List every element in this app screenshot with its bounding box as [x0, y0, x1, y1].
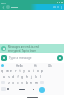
button[interactable]: g [20, 75, 24, 79]
button[interactable]: p [40, 69, 44, 73]
staticText: u [28, 69, 30, 73]
staticText: f [17, 75, 19, 79]
staticText: q [1, 69, 3, 73]
button[interactable]: Voice call [56, 5, 60, 9]
button[interactable]: q [0, 69, 4, 73]
staticText: Messages are end-to-end [8, 45, 39, 49]
button[interactable]: w [5, 69, 9, 73]
staticText: z [8, 81, 10, 85]
button[interactable]: i [31, 69, 35, 73]
staticText: Hi [34, 64, 37, 68]
button[interactable]: d [11, 75, 15, 79]
button[interactable]: k [34, 75, 38, 79]
button[interactable]: r [14, 69, 18, 73]
staticText: c [17, 81, 19, 85]
staticText: h [26, 75, 28, 79]
button[interactable]: e [9, 69, 13, 73]
button[interactable]: z [7, 81, 11, 85]
button[interactable]: Send [57, 55, 63, 61]
button[interactable]: Video call [52, 5, 56, 9]
staticText: d [12, 75, 14, 79]
staticText: l [40, 75, 41, 79]
staticText: Hello [16, 64, 23, 68]
staticText: 9:41 [1, 1, 6, 4]
button[interactable]: Space [19, 89, 25, 90]
button[interactable]: y [22, 69, 26, 73]
staticText: g [21, 75, 23, 79]
button[interactable]: o [36, 69, 40, 73]
button[interactable]: c [16, 81, 20, 85]
button[interactable]: v [20, 81, 24, 85]
staticText: i [33, 69, 34, 73]
staticText: p [41, 69, 43, 73]
button[interactable]: More options [60, 6, 63, 9]
staticText: t [19, 69, 21, 73]
staticText: encrypted. Tap to learn [8, 49, 37, 53]
button[interactable]: Messages are end-to-end [1, 44, 63, 53]
staticText: j [31, 75, 32, 79]
staticText: w [6, 69, 9, 73]
button[interactable] [6, 5, 10, 9]
staticText: y [23, 69, 25, 73]
button[interactable]: Google search [1, 64, 4, 67]
staticText: s [8, 75, 10, 79]
staticText: a [3, 75, 5, 79]
button[interactable]: m [34, 81, 38, 85]
button[interactable]: u [27, 69, 31, 73]
button[interactable]: Enter [39, 87, 45, 93]
staticText: k [35, 75, 37, 79]
button[interactable]: b [25, 81, 29, 85]
staticText: Ok [48, 64, 52, 68]
button[interactable]: j [29, 75, 33, 79]
button[interactable]: s [7, 75, 11, 79]
staticText: o [37, 69, 39, 73]
staticText: v [21, 81, 23, 85]
button[interactable]: a [2, 75, 6, 79]
staticText: n [30, 81, 32, 85]
button[interactable]: h [25, 75, 29, 79]
button[interactable]: l [38, 75, 42, 79]
staticText: Type a message [9, 56, 32, 60]
button[interactable]: t [18, 69, 22, 73]
staticText: x [12, 81, 14, 85]
button[interactable]: x [11, 81, 15, 85]
staticText: e [10, 69, 12, 73]
staticText: m [35, 81, 38, 85]
button[interactable]: n [29, 81, 33, 85]
button[interactable]: f [16, 75, 20, 79]
staticText: b [26, 81, 28, 85]
button[interactable]: Attach [1, 55, 7, 61]
button[interactable]: Back [1, 5, 6, 10]
staticText: r [15, 69, 17, 73]
